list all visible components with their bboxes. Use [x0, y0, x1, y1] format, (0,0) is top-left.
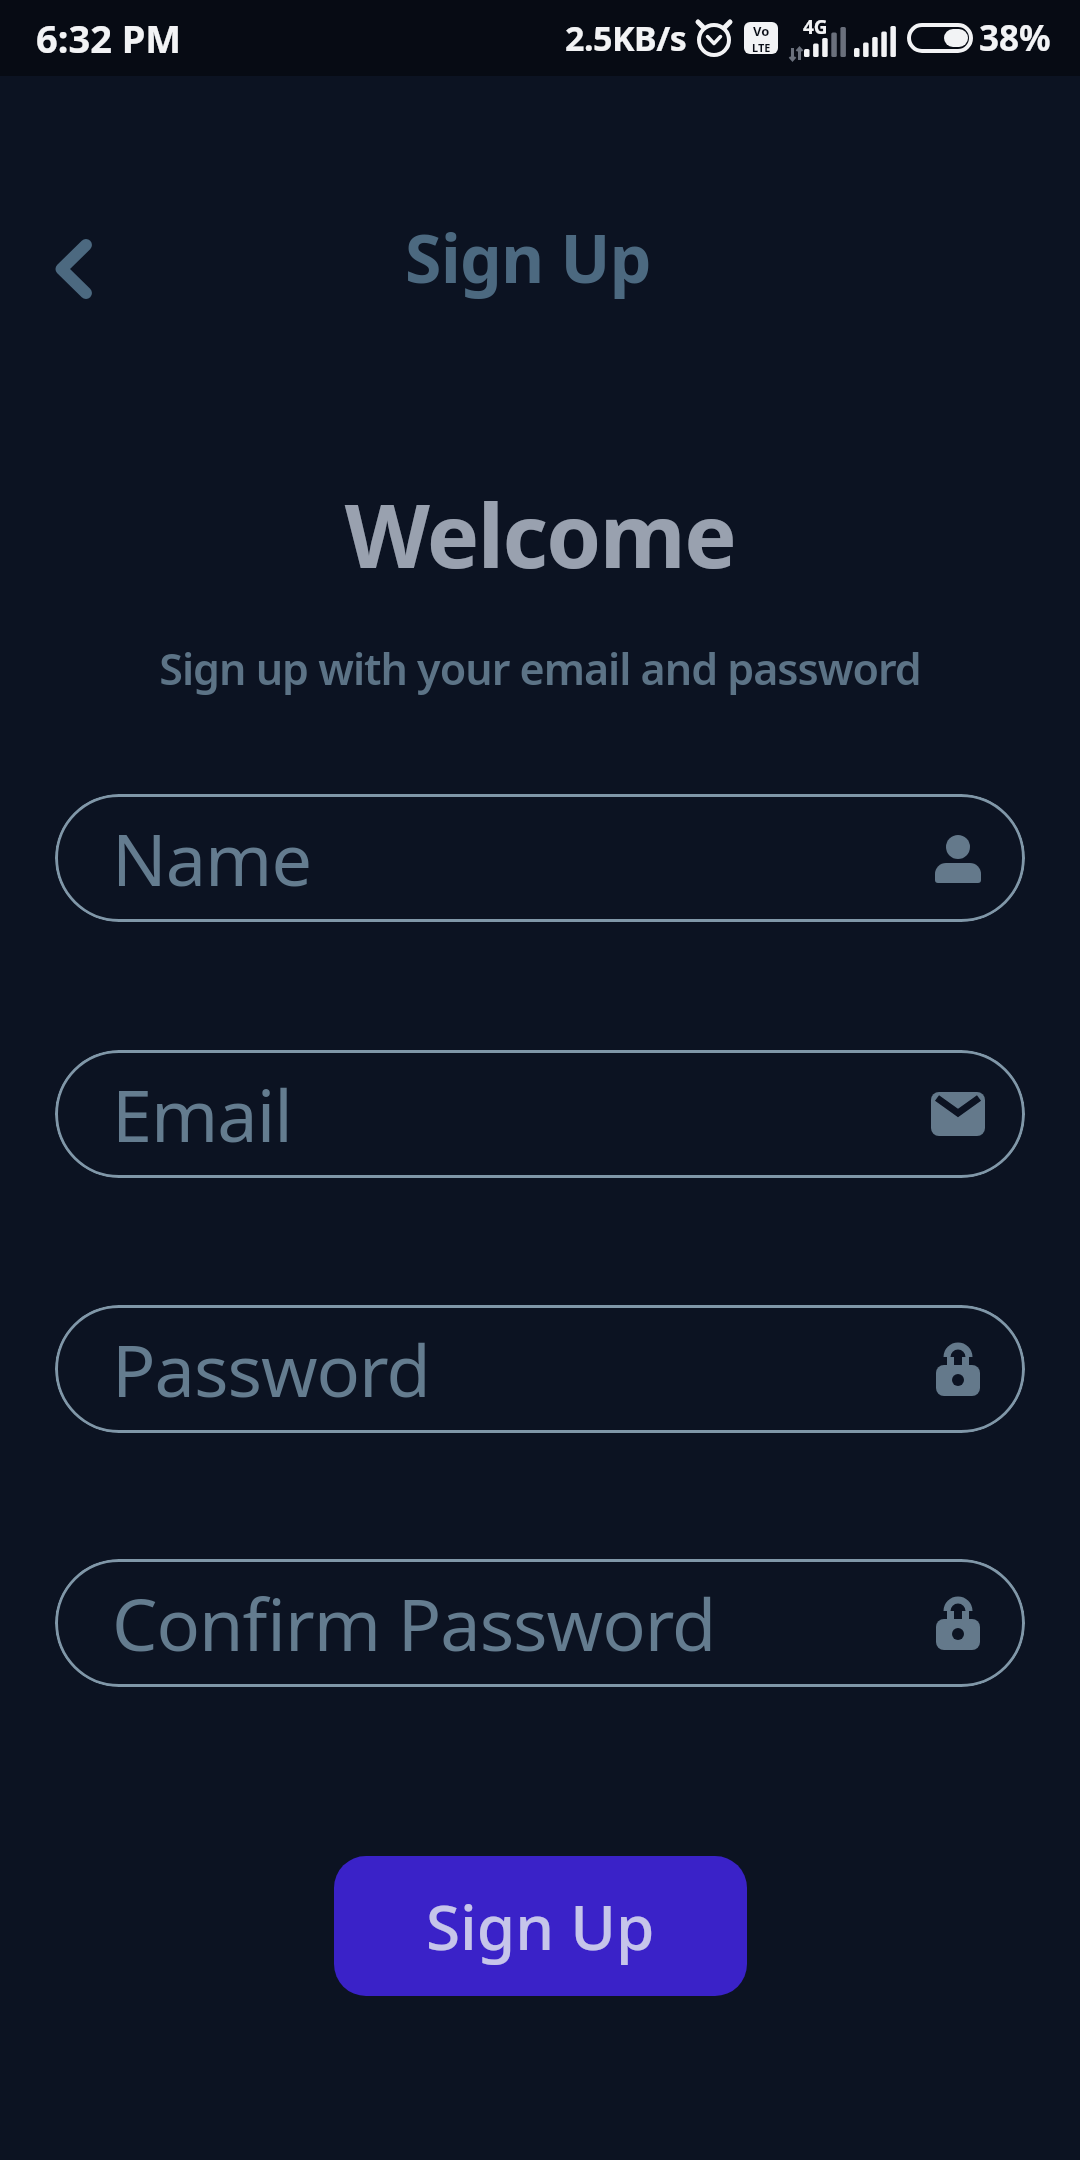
staticText: Sign Up — [0, 212, 1068, 302]
staticText: 2.5KB/s — [565, 15, 687, 61]
button[interactable]: Email — [55, 1050, 1025, 1178]
staticText: LTE — [752, 40, 771, 54]
button[interactable] — [38, 234, 108, 304]
staticText: 38% — [979, 14, 1051, 62]
staticText: Vo — [753, 22, 770, 40]
staticText: 6:32 PM — [36, 12, 182, 64]
button[interactable]: Name — [55, 794, 1025, 922]
staticText: Welcome — [0, 474, 1080, 594]
staticText: Name — [112, 809, 312, 907]
staticText: Email — [112, 1065, 292, 1163]
staticText: Password — [112, 1320, 430, 1418]
button[interactable]: Confirm Password — [55, 1559, 1025, 1687]
staticText: 4G — [803, 14, 828, 40]
staticText: Sign Up — [426, 1884, 655, 1968]
button[interactable]: Sign Up — [334, 1856, 747, 1996]
button[interactable]: Password — [55, 1305, 1025, 1433]
staticText: Sign up with your email and password — [0, 639, 1080, 698]
staticText: Confirm Password — [112, 1574, 716, 1672]
